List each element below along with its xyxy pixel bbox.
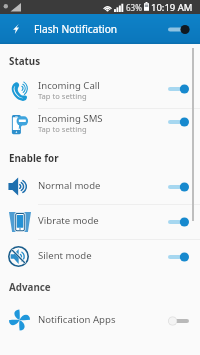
button[interactable]: Switch on [164, 78, 192, 100]
button[interactable]: Switch off [164, 310, 192, 332]
staticText: Incoming Call [38, 79, 100, 92]
button[interactable]: Silent mode [0, 239, 200, 274]
staticText: Tap to setting [38, 124, 87, 134]
staticText: Flash Notification [34, 22, 118, 36]
button[interactable]: Switch on [164, 211, 192, 233]
staticText: Advance [9, 281, 51, 294]
staticText: Enable for [9, 152, 59, 165]
staticText: Notification Apps [38, 313, 116, 326]
button[interactable]: Incoming Call [0, 72, 200, 105]
button[interactable]: Switch on [164, 111, 192, 133]
button[interactable]: Master switch [164, 21, 194, 37]
staticText: Vibrate mode [38, 214, 99, 227]
staticText: Silent mode [38, 249, 92, 262]
button[interactable]: Switch on [164, 176, 192, 198]
staticText: Status [9, 55, 41, 68]
staticText: Normal mode [38, 179, 101, 192]
button[interactable]: Incoming SMS [0, 105, 200, 138]
button[interactable]: Normal mode [0, 169, 200, 204]
staticText: Tap to setting [38, 91, 87, 101]
staticText: Incoming SMS [38, 112, 103, 125]
button[interactable]: Switch on [164, 246, 192, 268]
button[interactable]: Vibrate mode [0, 204, 200, 239]
staticText: 10:19 AM [151, 1, 193, 14]
button[interactable]: Notification Apps [0, 303, 200, 338]
staticText: 63% [126, 2, 142, 13]
